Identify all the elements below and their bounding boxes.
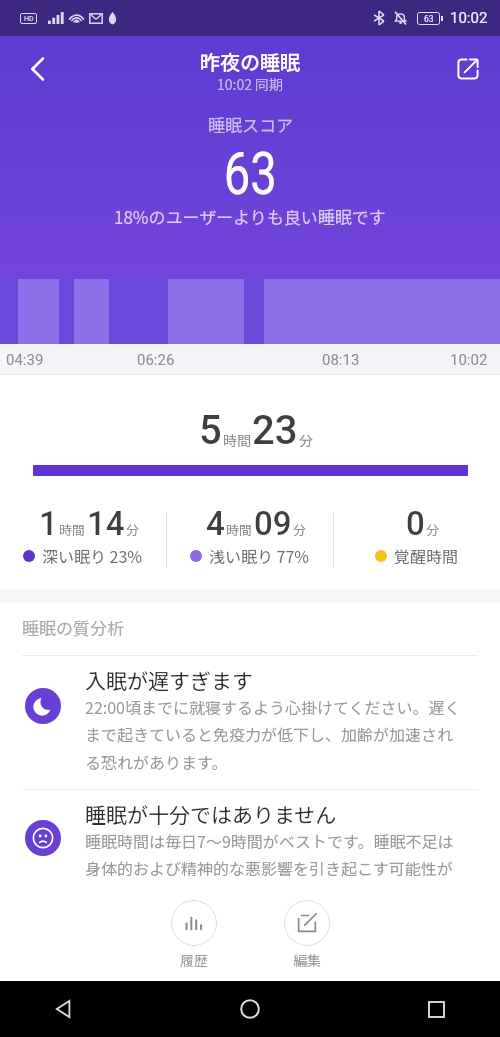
staticText: 22:00頃までに就寝するよう心掛けてください。遅くまで起きていると免疫力が低下… xyxy=(85,695,467,774)
button[interactable]: Share xyxy=(448,49,488,89)
staticText: 昨夜の睡眠 xyxy=(200,47,300,76)
staticText: 18%のユーザーよりも良い睡眠です xyxy=(114,204,386,229)
staticText: 編集 xyxy=(293,950,321,970)
staticText: 睡眠が十分ではありません xyxy=(85,799,337,829)
staticText: 覚醒時間 xyxy=(394,544,459,567)
staticText: 時間 xyxy=(59,520,86,539)
staticText: 14 xyxy=(87,504,125,543)
button[interactable]: 履歴 xyxy=(160,900,228,970)
staticText: 時間 xyxy=(223,430,251,450)
button[interactable]: Back xyxy=(17,49,57,89)
staticText: 1 xyxy=(39,504,58,543)
button[interactable]: Back xyxy=(44,989,84,1029)
staticText: 分 xyxy=(426,520,440,539)
button[interactable]: Home xyxy=(230,989,270,1029)
staticText: 10:02 xyxy=(450,9,488,27)
staticText: 分 xyxy=(126,520,140,539)
staticText: 浅い眠り 77% xyxy=(209,544,310,567)
staticText: 深い眠り 23% xyxy=(42,544,143,567)
staticText: 睡眠時間は毎日7〜9時間がベストです。睡眠不足は身体的および精神的な悪影響を引き… xyxy=(85,829,467,880)
staticText: 時間 xyxy=(226,520,253,539)
staticText: 06:26 xyxy=(137,351,175,369)
staticText: 履歴 xyxy=(180,950,208,970)
staticText: 10:02 xyxy=(450,351,488,369)
staticText: 入眠が遅すぎます xyxy=(85,665,253,695)
button[interactable]: Recents xyxy=(416,989,456,1029)
staticText: HD xyxy=(24,15,34,23)
staticText: 分 xyxy=(299,430,313,450)
staticText: 09 xyxy=(254,504,292,543)
staticText: 23 xyxy=(252,407,298,454)
staticText: 0 xyxy=(406,504,425,543)
staticText: 04:39 xyxy=(6,351,44,369)
staticText: 63 xyxy=(424,14,434,24)
staticText: 睡眠スコア xyxy=(208,112,293,137)
staticText: 分 xyxy=(293,520,307,539)
staticText: 10:02 同期 xyxy=(217,74,284,94)
staticText: 4 xyxy=(206,504,225,543)
staticText: 63 xyxy=(224,139,277,208)
staticText: 睡眠の質分析 xyxy=(22,615,124,640)
button[interactable]: 編集 xyxy=(273,900,341,970)
staticText: 08:13 xyxy=(322,351,360,369)
staticText: 5 xyxy=(199,407,222,454)
